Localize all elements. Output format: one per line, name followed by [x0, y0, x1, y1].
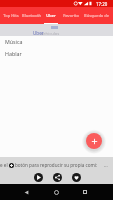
button[interactable]: Música — [0, 36, 113, 48]
staticText: Uber — [46, 13, 56, 18]
button[interactable]: Búsqueda de — [80, 7, 112, 24]
button[interactable]: Top Hits — [0, 7, 21, 24]
staticText: Bluetooth — [22, 13, 41, 18]
button[interactable]: Favorite — [72, 173, 81, 182]
button[interactable]: Recents — [80, 187, 90, 197]
button[interactable]: Back — [21, 187, 31, 197]
staticText: Top Hits — [3, 13, 19, 18]
button[interactable]: Share — [53, 173, 62, 182]
staticText: Música — [5, 38, 23, 45]
staticText: Hablar — [5, 50, 22, 57]
staticText: vehiculos — [41, 31, 60, 37]
staticText: Uber — [33, 30, 44, 36]
button[interactable]: Home — [51, 187, 61, 197]
staticText: Búsqueda de — [84, 13, 109, 18]
button[interactable]: Hablar — [0, 48, 113, 60]
button[interactable]: Add — [86, 133, 102, 149]
staticText: 17:20 — [96, 1, 108, 7]
button[interactable]: Play — [34, 173, 43, 182]
button[interactable]: Bluetooth — [19, 7, 43, 24]
staticText: ... — [104, 162, 108, 168]
staticText: botón para reproducir su propia comi: — [15, 162, 98, 168]
button[interactable]: Favorito — [60, 7, 81, 24]
staticText: Favorito — [63, 13, 79, 18]
staticText: e el — [0, 162, 8, 168]
button[interactable]: Uber — [44, 7, 58, 24]
